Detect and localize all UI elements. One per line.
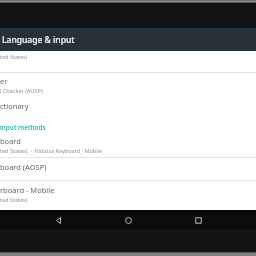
staticText: Language & input xyxy=(2,34,75,46)
button[interactable]: ted States) xyxy=(0,51,256,72)
button[interactable]: er xyxy=(0,73,256,97)
button[interactable]: rboard - Mobile xyxy=(0,181,256,205)
staticText: board (AOSP) xyxy=(0,162,47,172)
button[interactable]: board (AOSP) xyxy=(0,158,256,180)
button[interactable]: Home xyxy=(116,210,140,230)
button[interactable]: Language & input xyxy=(0,28,256,51)
staticText: ted States) xyxy=(0,53,28,60)
button[interactable]: Back xyxy=(46,210,70,230)
button[interactable]: board xyxy=(0,134,256,157)
staticText: ctionary xyxy=(0,101,29,111)
staticText: ted States) · Hidatsa Keyboard · Mobile xyxy=(0,147,103,154)
staticText: input methods xyxy=(0,123,46,132)
button[interactable]: ctionary xyxy=(0,97,256,118)
staticText: ted States) xyxy=(0,196,28,203)
button[interactable]: Recents xyxy=(186,210,210,230)
staticText: l Checker (AOSP) xyxy=(0,87,43,94)
staticText: board xyxy=(0,136,21,146)
staticText: rboard - Mobile xyxy=(0,185,55,195)
staticText: er xyxy=(0,76,8,86)
